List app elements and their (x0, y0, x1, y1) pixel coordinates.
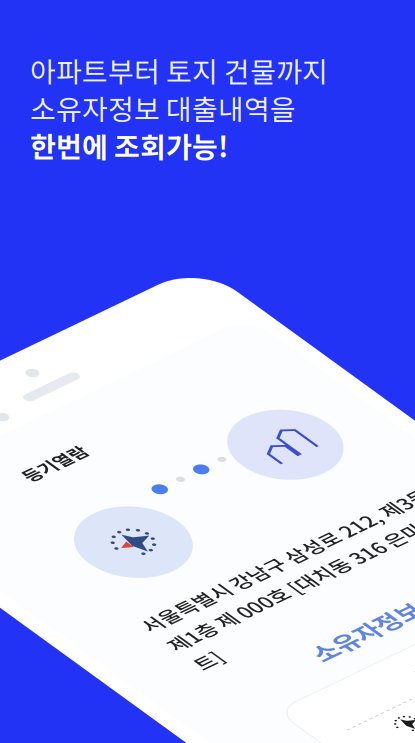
staticText: 아파트부터 토지 건물까지 (30, 50, 328, 90)
staticText: 제1층 제 000호 [대치동 316 은마아파 (74, 347, 376, 375)
staticText: 소유자정보 조회 (158, 421, 317, 456)
staticText: 서울특별시 강남구 삼성로 212, 제3동 (74, 316, 374, 344)
button[interactable]: 소유자정보 조회 (158, 421, 317, 456)
staticText: 한번에 조회가능! (30, 125, 228, 166)
staticText: 소유자정보 대출내역을 (30, 87, 296, 128)
staticText: 등기열람 (130, 114, 194, 139)
